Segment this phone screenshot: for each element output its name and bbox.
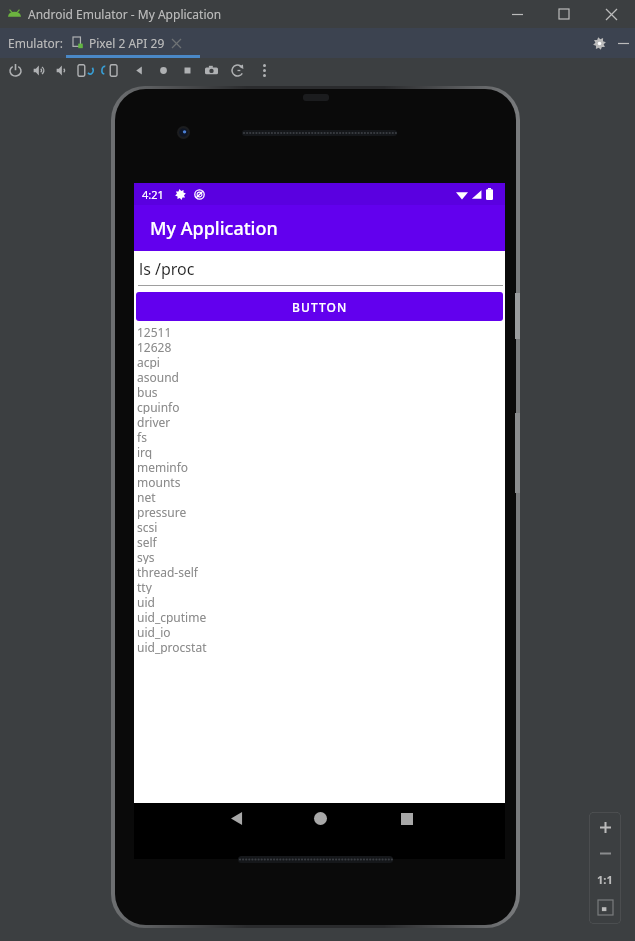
staticText: bus [137,384,158,399]
staticText: scsi [137,519,158,534]
button[interactable]: Settings [586,28,612,58]
staticText: Emulator: [8,35,63,51]
staticText: uid_procstat [137,639,207,654]
button[interactable]: Volume up [28,58,50,82]
staticText: net [137,489,156,504]
staticText: driver [137,414,171,429]
button[interactable]: Back [212,803,262,859]
button[interactable]: Recents [382,803,432,859]
staticText: uid [137,594,155,609]
button[interactable]: Fit to screen [589,892,621,922]
button[interactable]: Rotate left [73,58,95,82]
button[interactable]: BUTTON [136,292,503,321]
button[interactable]: Home [152,58,174,82]
staticText: 12511 [137,324,172,339]
button[interactable]: Volume down [51,58,73,82]
button[interactable]: Hide [612,28,635,58]
staticText: asound [137,369,179,384]
staticText: cpuinfo [137,399,180,414]
button[interactable]: Back [128,58,150,82]
staticText: Android Emulator - My Application [28,6,222,22]
button[interactable]: Pixel 2 API 29 [72,28,181,58]
staticText: Pixel 2 API 29 [89,35,165,51]
button[interactable]: Recents [176,58,198,82]
staticText: uid_cputime [137,609,207,624]
staticText: irq [137,444,153,459]
button[interactable]: Zoom out [589,840,621,866]
staticText: sys [137,549,155,564]
staticText: mounts [137,474,181,489]
staticText: pressure [137,504,187,519]
button[interactable]: ls /proc [134,251,505,289]
button[interactable]: Home [295,803,345,859]
staticText: thread-self [137,564,198,579]
button[interactable]: Minimize [498,0,536,28]
button[interactable]: 1:1 [589,866,621,892]
button[interactable]: Rotate right [99,58,121,82]
button[interactable]: History [226,58,248,82]
staticText: 12628 [137,339,172,354]
button[interactable]: Maximize [545,0,583,28]
button[interactable]: More [256,58,272,82]
staticText: tty [137,579,152,594]
staticText: BUTTON [292,299,348,315]
staticText: uid_io [137,624,171,639]
staticText: 4:21 [142,187,164,202]
staticText: meminfo [137,459,189,474]
button[interactable]: Zoom in [589,814,621,840]
staticText: acpi [137,354,160,369]
staticText: 1:1 [597,872,613,887]
button[interactable]: Power [4,58,26,82]
staticText: My Application [150,216,278,241]
button[interactable]: Close [591,0,631,28]
button[interactable]: Screenshot [200,58,222,82]
staticText: ls /proc [139,258,195,280]
staticText: self [137,534,157,549]
staticText: fs [137,429,147,444]
